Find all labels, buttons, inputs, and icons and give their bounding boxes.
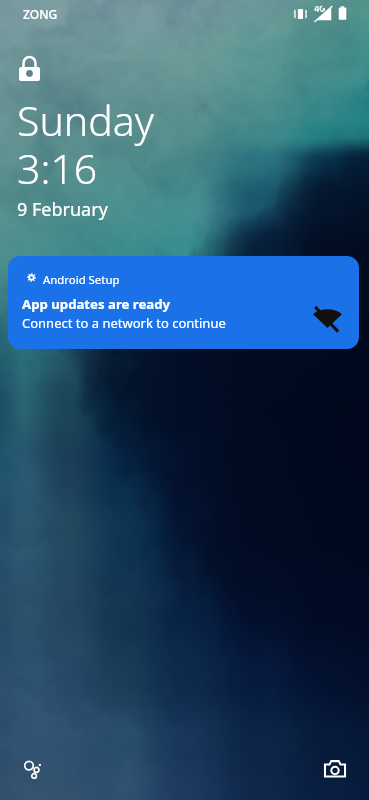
staticText: Connect to a network to continue [22, 314, 226, 332]
other: Device locked [19, 57, 40, 81]
staticText: Android Setup [43, 272, 120, 288]
staticText: App updates are ready [22, 295, 171, 313]
staticText: 3:16 [17, 140, 98, 196]
button[interactable]: Camera [323, 758, 347, 782]
staticText: Sunday [17, 92, 154, 148]
button[interactable]: Android Setup [8, 256, 359, 349]
staticText: 9 February [17, 197, 108, 222]
staticText: ZONG [23, 6, 58, 22]
button[interactable]: Voice assistant [23, 759, 43, 779]
